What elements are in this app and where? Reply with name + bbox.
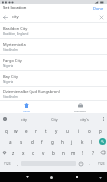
staticText: h xyxy=(61,139,64,145)
button[interactable]: Shift xyxy=(0,147,9,158)
button[interactable]: f xyxy=(37,136,47,147)
staticText: m xyxy=(71,150,76,156)
button[interactable]: ? xyxy=(88,147,98,158)
staticText: s xyxy=(20,139,23,145)
button[interactable]: i xyxy=(73,125,84,136)
button[interactable]: Close keyboard xyxy=(22,172,33,182)
staticText: City xyxy=(51,117,58,122)
button[interactable]: Search xyxy=(97,136,107,147)
button[interactable]: Home xyxy=(46,172,57,182)
button[interactable]: Backspace xyxy=(98,147,107,158)
staticText: d xyxy=(31,139,34,145)
button[interactable]: m xyxy=(68,147,78,158)
staticText: ?123 xyxy=(4,162,11,166)
button[interactable]: o xyxy=(84,125,95,136)
button[interactable]: z xyxy=(9,147,18,158)
staticText: ! xyxy=(82,150,84,156)
button[interactable]: k xyxy=(77,136,87,147)
button[interactable]: ! xyxy=(78,147,88,158)
staticText: Home xyxy=(23,109,30,112)
staticText: Nigeria xyxy=(3,64,14,68)
staticText: l xyxy=(91,139,93,145)
staticText: z xyxy=(12,150,15,156)
button[interactable]: Clear text xyxy=(96,12,106,22)
staticText: Nigeria xyxy=(3,80,14,84)
button[interactable]: j xyxy=(67,136,77,147)
staticText: j xyxy=(71,139,73,145)
staticText: Basildon, England xyxy=(3,32,29,36)
button[interactable]: Workplace xyxy=(53,101,107,113)
staticText: u xyxy=(66,128,69,134)
staticText: w xyxy=(14,128,18,134)
staticText: a xyxy=(9,139,12,145)
staticText: c xyxy=(32,150,35,156)
staticText: y xyxy=(55,128,58,134)
button[interactable]: v xyxy=(38,147,48,158)
button[interactable]: l xyxy=(87,136,97,147)
button[interactable]: w xyxy=(11,125,21,136)
button[interactable]: Comma xyxy=(14,158,21,169)
button[interactable]: city xyxy=(9,113,39,125)
button[interactable]: Navigate back xyxy=(0,12,10,22)
staticText: Stockholm xyxy=(3,48,18,52)
button[interactable]: q xyxy=(1,125,11,136)
button[interactable]: Done xyxy=(90,4,107,12)
button[interactable]: t xyxy=(41,125,51,136)
staticText: k xyxy=(81,139,84,145)
button[interactable]: Myrtemixtla xyxy=(0,39,107,55)
staticText: o xyxy=(88,128,91,134)
staticText: Done xyxy=(93,6,104,11)
staticText: x xyxy=(22,150,25,156)
button[interactable]: c xyxy=(28,147,38,158)
button[interactable]: Emoji xyxy=(76,158,85,169)
button[interactable]: Recent apps xyxy=(71,172,82,182)
button[interactable]: Fargo City xyxy=(0,55,107,71)
button[interactable]: a xyxy=(5,136,16,147)
button[interactable]: r xyxy=(31,125,41,136)
staticText: ?123 xyxy=(98,162,105,166)
button[interactable]: x xyxy=(18,147,28,158)
staticText: Basildon City xyxy=(3,26,28,31)
staticText: city xyxy=(21,117,27,122)
button[interactable]: City xyxy=(39,113,69,125)
staticText: ? xyxy=(92,150,94,156)
button[interactable]: More options xyxy=(99,113,107,125)
button[interactable]: ?123 xyxy=(0,158,14,169)
staticText: r xyxy=(35,128,37,134)
staticText: q xyxy=(5,128,8,134)
staticText: Stockholm xyxy=(3,95,18,99)
button[interactable]: n xyxy=(58,147,68,158)
staticText: b xyxy=(52,150,55,156)
button[interactable]: u xyxy=(62,125,73,136)
button[interactable]: Dziemienalbe (jud Kungsbron) xyxy=(0,87,107,101)
staticText: p xyxy=(99,128,102,134)
button[interactable]: d xyxy=(27,136,37,147)
staticText: , xyxy=(17,161,19,166)
button[interactable]: Basildon City xyxy=(0,23,107,39)
button[interactable]: Bay City xyxy=(0,71,107,87)
button[interactable]: city's xyxy=(69,113,99,125)
button[interactable]: p xyxy=(95,125,106,136)
staticText: i xyxy=(78,128,80,134)
staticText: v xyxy=(42,150,45,156)
staticText: Dziemienalbe (jud Kungsbron) xyxy=(3,89,60,94)
button[interactable]: s xyxy=(16,136,27,147)
staticText: Myrtemixtla xyxy=(3,42,26,47)
staticText: t xyxy=(45,128,47,134)
staticText: f xyxy=(41,139,43,145)
staticText: Bay City xyxy=(3,74,18,79)
staticText: city's xyxy=(80,117,89,122)
staticText: g xyxy=(51,139,54,145)
button[interactable]: e xyxy=(21,125,31,136)
staticText: city xyxy=(12,14,19,20)
button[interactable]: Expand suggestions xyxy=(0,113,9,125)
button[interactable]: g xyxy=(47,136,57,147)
button[interactable]: Home xyxy=(0,101,53,113)
button[interactable]: Switch keyboard xyxy=(96,173,105,182)
button[interactable]: y xyxy=(51,125,62,136)
button[interactable]: ?123 xyxy=(95,158,107,169)
button[interactable]: b xyxy=(48,147,58,158)
button[interactable]: h xyxy=(57,136,67,147)
